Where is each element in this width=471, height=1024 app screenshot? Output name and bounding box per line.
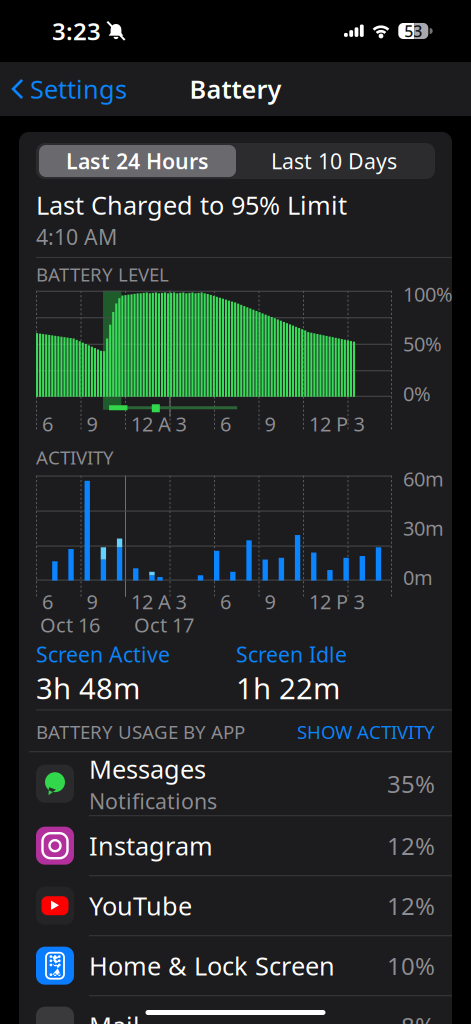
staticText: 12 A	[131, 588, 171, 615]
staticText: 100%	[403, 281, 453, 307]
staticText: Mail	[89, 1009, 140, 1024]
staticText: Home & Lock Screen	[89, 949, 335, 982]
staticText: 0m	[403, 564, 433, 591]
staticText: 9	[86, 410, 97, 437]
staticText: 60m	[403, 466, 444, 492]
staticText: Last Charged to 95% Limit	[36, 188, 347, 222]
staticText: 9	[86, 588, 97, 615]
button[interactable]: Mail	[19, 996, 452, 1024]
staticText: BATTERY USAGE BY APP	[36, 719, 245, 744]
staticText: 8%	[401, 1010, 435, 1024]
staticText: 3	[353, 410, 364, 437]
staticText: 4:10 AM	[36, 223, 117, 251]
button[interactable]: Last 10 Days	[236, 145, 432, 177]
staticText: Settings	[30, 72, 127, 106]
button[interactable]: YouTube	[19, 876, 452, 935]
staticText: Oct 16	[40, 612, 100, 638]
staticText: 0%	[403, 380, 431, 407]
staticText: 3	[353, 588, 364, 615]
staticText: 12 A	[131, 410, 171, 437]
staticText: SHOW ACTIVITY	[297, 719, 435, 744]
staticText: Last 10 Days	[271, 147, 397, 175]
staticText: 50%	[403, 330, 442, 357]
staticText: 9	[264, 588, 275, 615]
button[interactable]: Messages	[19, 752, 452, 815]
staticText: 12%	[387, 890, 435, 922]
staticText: YouTube	[89, 889, 192, 922]
staticText: 10%	[387, 950, 435, 982]
staticText: 35%	[387, 768, 435, 800]
staticText: Messages	[89, 752, 206, 786]
staticText: 12%	[387, 830, 435, 862]
staticText: 9	[264, 410, 275, 437]
staticText: 3	[175, 410, 186, 437]
staticText: 1h 22m	[236, 668, 340, 707]
staticText: Last 24 Hours	[66, 147, 209, 175]
button[interactable]: Settings	[0, 63, 127, 115]
staticText: 53	[404, 20, 422, 42]
staticText: BATTERY LEVEL	[36, 262, 169, 287]
staticText: Screen Active	[36, 640, 170, 668]
button[interactable]: Home & Lock Screen	[19, 936, 452, 995]
staticText: 12 P	[309, 588, 348, 615]
staticText: 3h 48m	[36, 668, 140, 707]
staticText: 3:23	[52, 15, 101, 47]
staticText: 6	[220, 588, 231, 615]
staticText: Oct 17	[134, 612, 194, 638]
button[interactable]: Instagram	[19, 816, 452, 875]
staticText: 30m	[403, 515, 444, 541]
button[interactable]: Last 24 Hours	[39, 145, 236, 177]
staticText: ACTIVITY	[36, 445, 114, 470]
staticText: Notifications	[89, 787, 217, 815]
staticText: 6	[220, 410, 231, 437]
button[interactable]: SHOW ACTIVITY	[297, 719, 435, 744]
staticText: 3	[175, 588, 186, 615]
staticText: Instagram	[89, 829, 213, 862]
staticText: 6	[42, 410, 53, 437]
staticText: 6	[42, 588, 53, 615]
staticText: Battery	[189, 72, 281, 106]
staticText: 12 P	[309, 410, 348, 437]
staticText: Screen Idle	[236, 640, 347, 668]
